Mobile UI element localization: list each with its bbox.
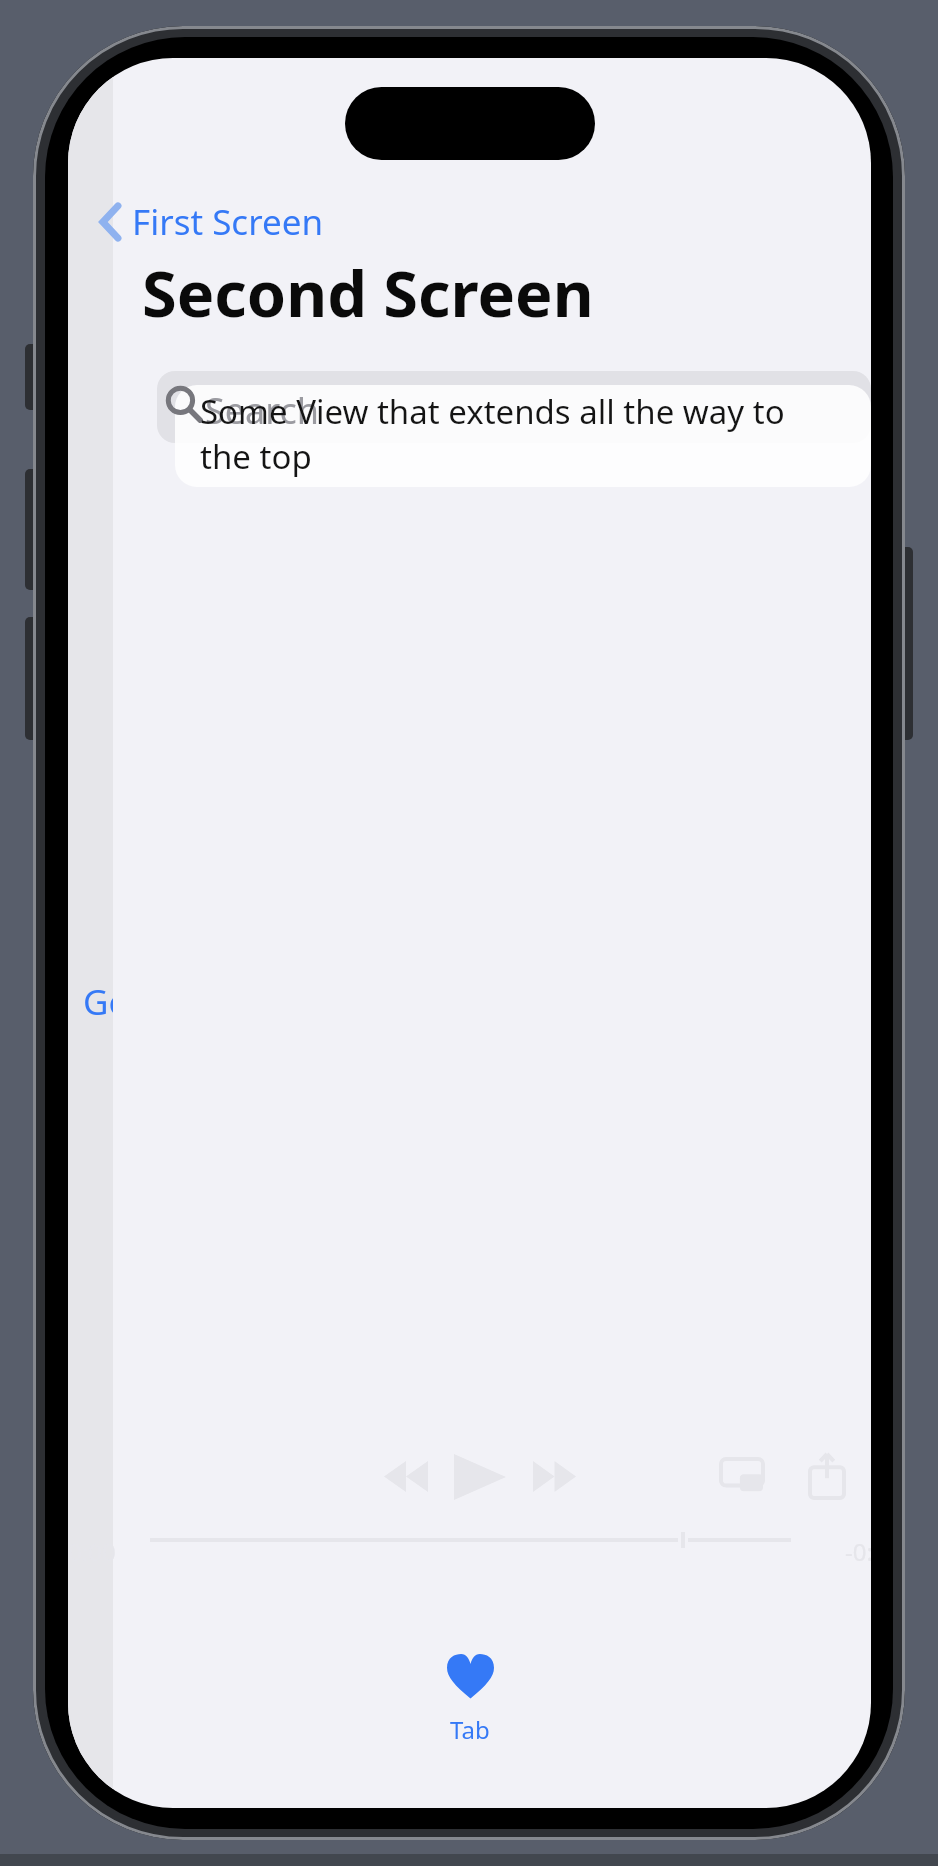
staticText: Some View that extends all the way to th… [200, 389, 785, 478]
staticText: Tab [450, 1713, 490, 1746]
button[interactable]: Tab [420, 1654, 520, 1746]
button[interactable]: First Screen [95, 198, 324, 246]
button[interactable] [175, 385, 871, 487]
staticText: First Screen [132, 198, 324, 246]
staticText: Second Screen [142, 250, 594, 336]
button[interactable] [157, 371, 871, 443]
staticText: Go [83, 978, 113, 1026]
staticText: Search [205, 386, 319, 435]
staticText: -0:00 [845, 1535, 871, 1568]
